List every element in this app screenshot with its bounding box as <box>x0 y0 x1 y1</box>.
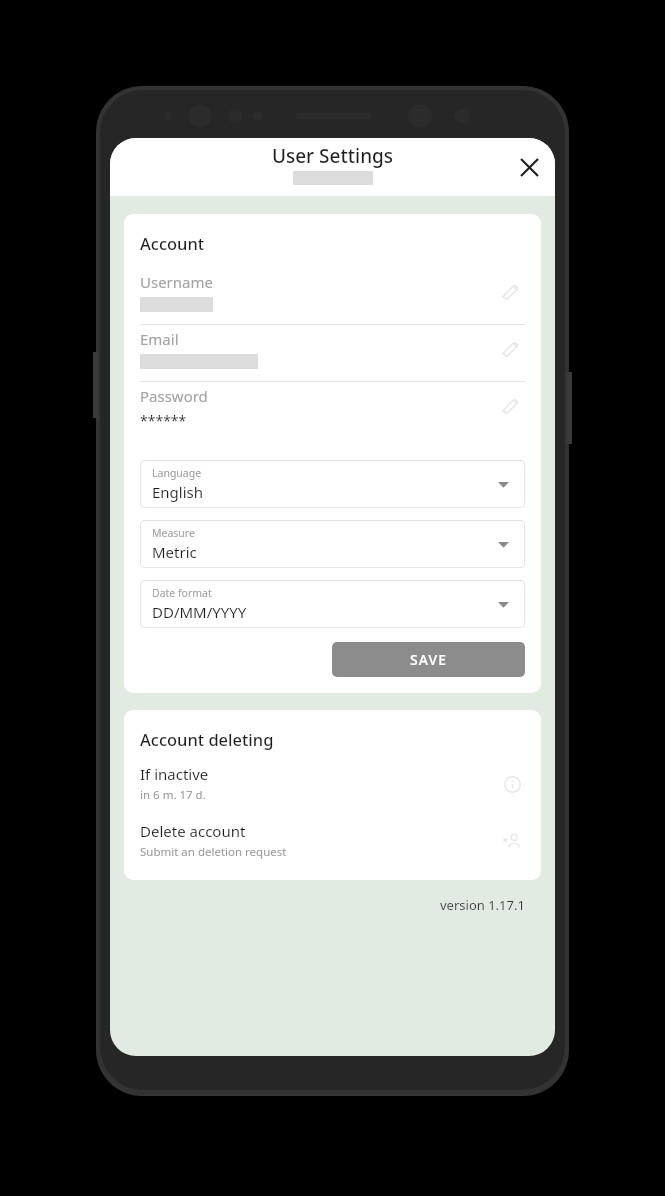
staticText: version 1.17.1 <box>440 896 525 914</box>
button[interactable]: Email <box>140 325 525 382</box>
staticText: Delete account <box>140 821 246 841</box>
button[interactable]: Edit Password <box>495 390 525 420</box>
staticText: Language <box>152 466 202 480</box>
staticText: English <box>152 482 204 502</box>
staticText: Date format <box>152 586 212 600</box>
button[interactable]: SAVE <box>332 642 525 677</box>
staticText: User Settings <box>110 143 555 169</box>
button[interactable]: Edit Username <box>495 276 525 306</box>
staticText: Account <box>140 232 205 254</box>
staticText: If inactive <box>140 764 209 784</box>
staticText: ****** <box>140 411 187 430</box>
staticText: Account deleting <box>140 728 274 750</box>
staticText: Email <box>140 329 179 349</box>
staticText: in 6 m. 17 d. <box>140 787 206 803</box>
staticText: Metric <box>152 542 197 562</box>
button[interactable]: Edit Email <box>495 333 525 363</box>
staticText: Measure <box>152 526 195 540</box>
button[interactable]: Language <box>140 460 525 508</box>
staticText: DD/MM/YYYY <box>152 602 247 622</box>
button[interactable]: Username <box>140 268 525 325</box>
staticText: Username <box>140 272 213 292</box>
button[interactable]: If inactive <box>140 764 525 803</box>
button[interactable]: Password <box>140 382 525 442</box>
staticText: Submit an deletion request <box>140 844 287 860</box>
staticText: Password <box>140 386 208 406</box>
button[interactable]: Close <box>509 147 549 187</box>
staticText: SAVE <box>410 650 448 669</box>
button[interactable]: Date format <box>140 580 525 628</box>
button[interactable]: Measure <box>140 520 525 568</box>
button[interactable]: Delete account <box>140 821 525 860</box>
